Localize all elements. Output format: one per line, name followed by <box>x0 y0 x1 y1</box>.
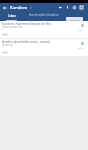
staticText: Kundera <box>10 5 27 11</box>
button[interactable]: Another placeholder entry - second <box>0 39 88 56</box>
staticText: ... <box>43 18 46 21</box>
staticText: Search within Kundera <box>29 13 59 17</box>
staticText: Lorem ip <box>2 43 13 47</box>
button[interactable]: Apps <box>78 3 85 12</box>
staticText: Kundera: implement feature for this <box>2 22 51 26</box>
staticText: Lorem ipsum do <box>2 25 22 29</box>
button[interactable]: Inbox <box>6 12 17 21</box>
button[interactable]: Help <box>71 3 78 12</box>
staticText: Another placeholder entry - second <box>2 40 50 44</box>
staticText: New item <box>69 18 81 21</box>
button[interactable]: Search within Kundera <box>29 13 59 21</box>
staticText: tag <box>3 33 7 36</box>
button[interactable]: New item <box>66 17 83 21</box>
staticText: Inbox <box>8 14 16 18</box>
button[interactable]: Notifications <box>64 3 71 12</box>
button[interactable]: Kundera <box>10 5 32 11</box>
button[interactable]: Back <box>0 3 9 12</box>
staticText: tag <box>3 51 7 54</box>
button[interactable]: Kundera: implement feature for this <box>0 21 88 38</box>
button[interactable]: Video call <box>57 3 64 12</box>
